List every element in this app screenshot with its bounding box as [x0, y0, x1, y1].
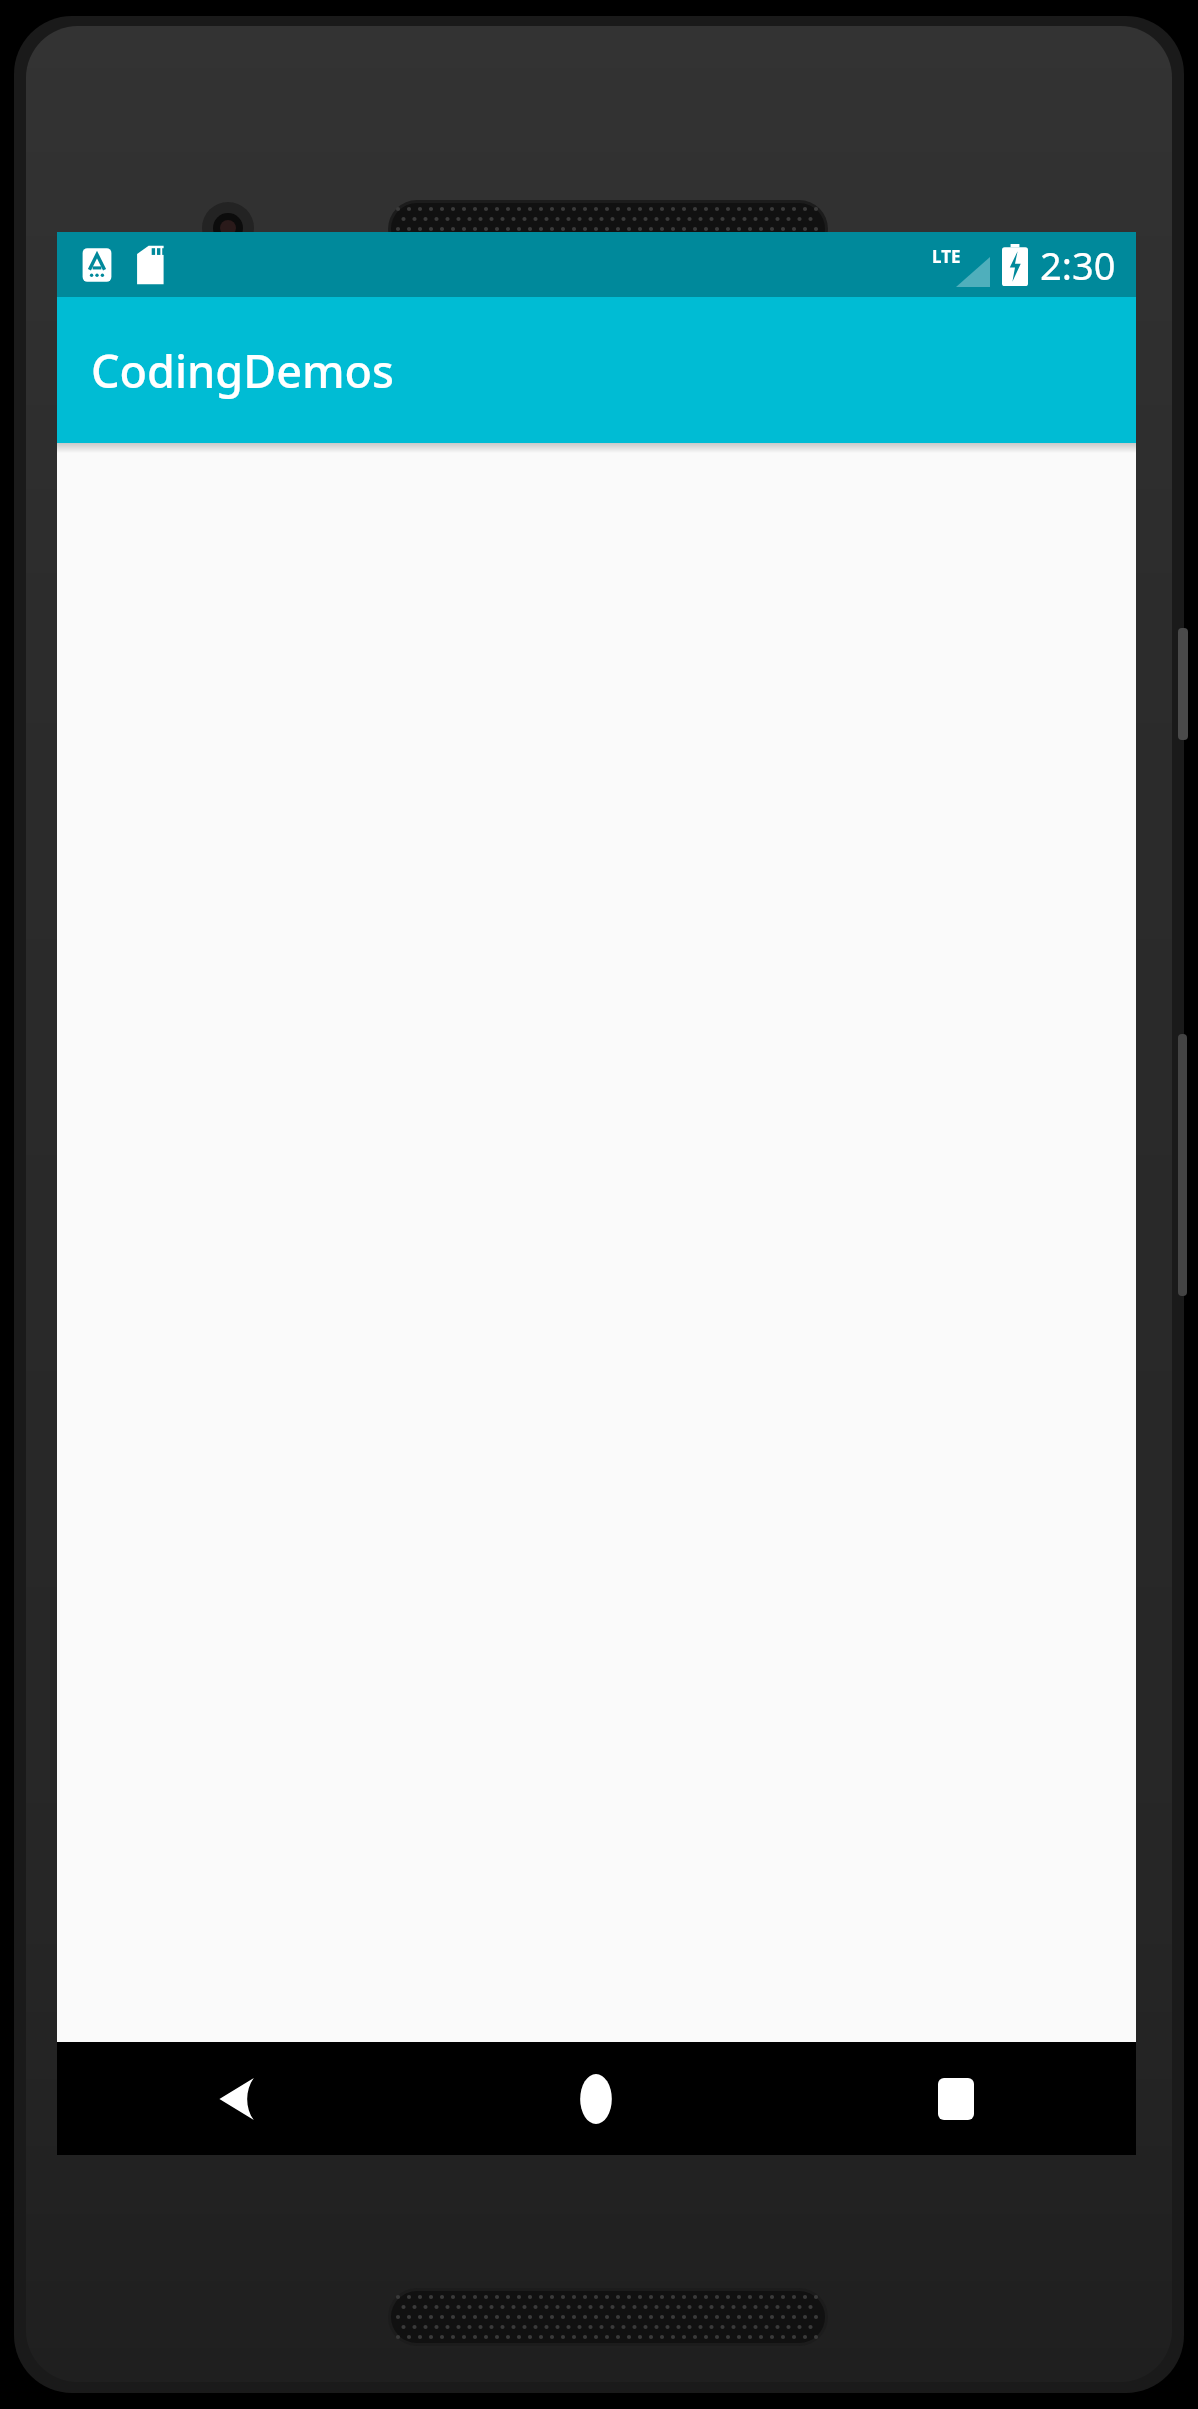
button[interactable]: Home: [416, 2042, 776, 2155]
staticText: CodingDemos: [91, 340, 394, 401]
staticText: LTE: [932, 245, 961, 268]
button[interactable]: Recent apps: [776, 2042, 1136, 2155]
button[interactable]: Back: [57, 2042, 416, 2155]
staticText: 2:30: [1040, 239, 1116, 291]
